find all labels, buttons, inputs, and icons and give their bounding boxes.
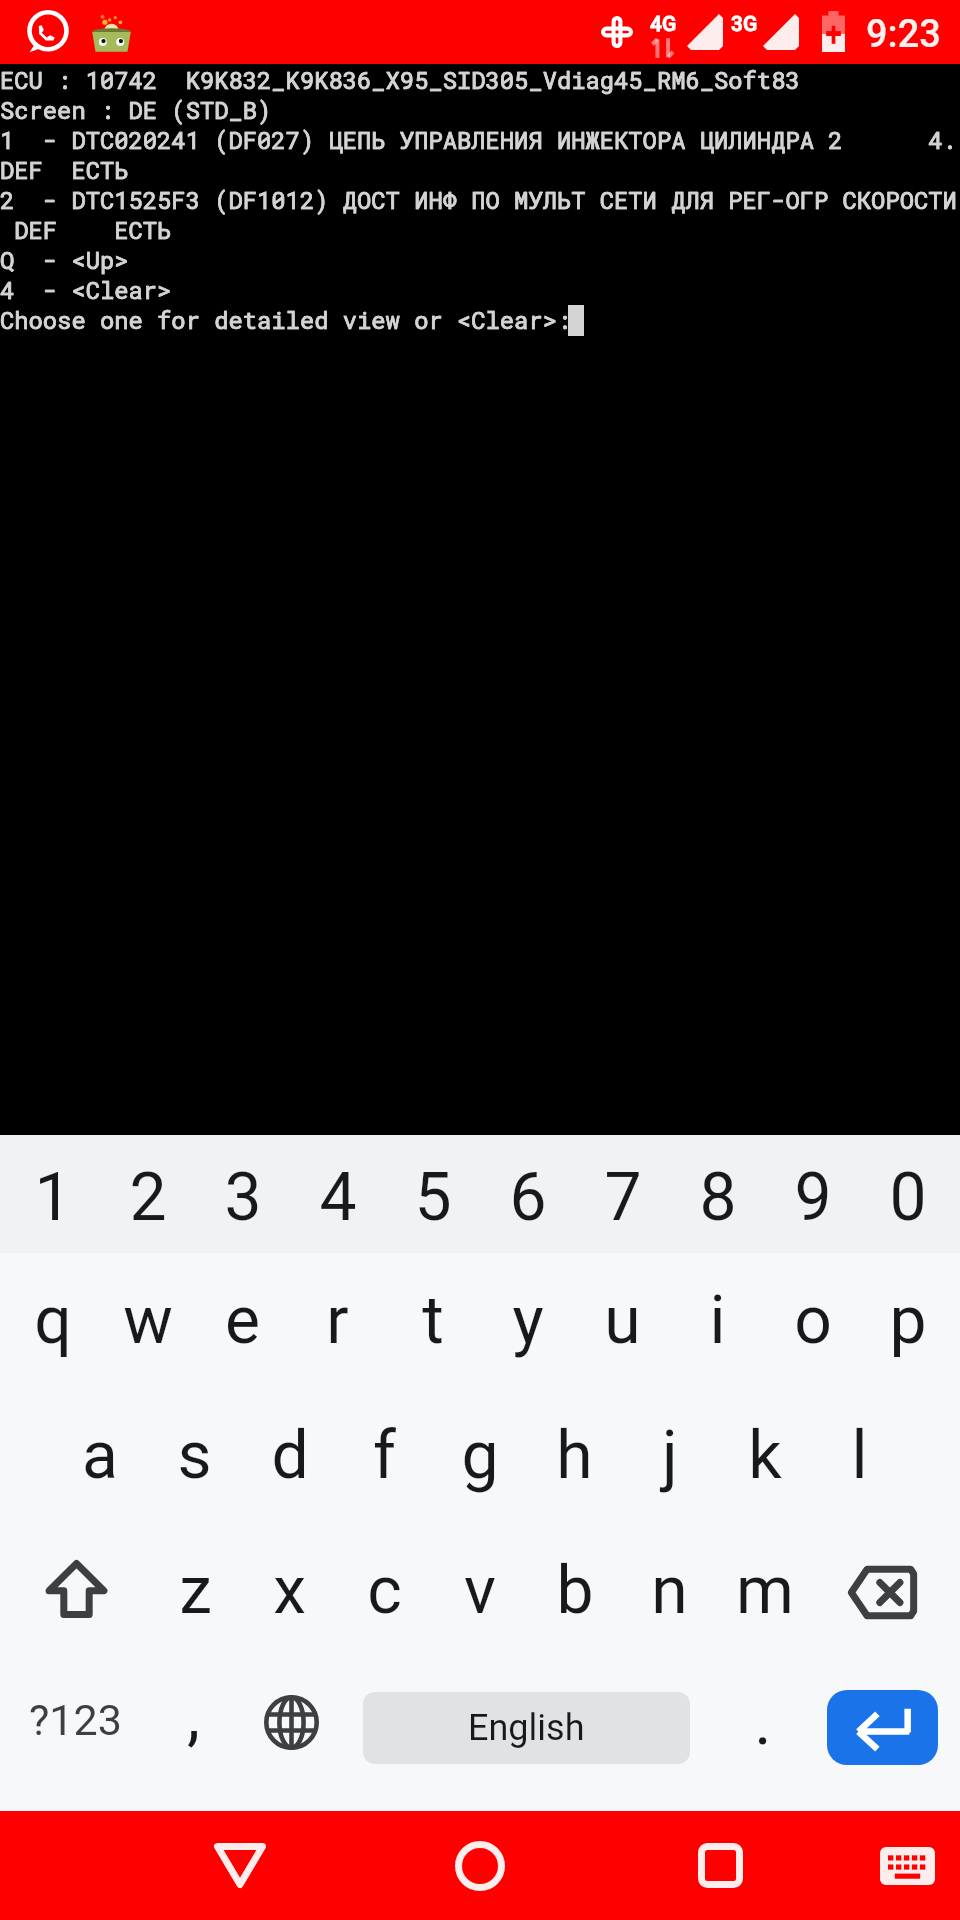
staticText: DEF ЕСТЬ — [0, 214, 172, 245]
staticText: v — [464, 1552, 496, 1629]
button[interactable]: y — [480, 1253, 575, 1388]
staticText: o — [794, 1282, 832, 1359]
button[interactable]: Shift — [0, 1523, 148, 1658]
button[interactable]: n — [622, 1523, 717, 1658]
button[interactable]: Recents — [650, 1811, 790, 1920]
staticText: Choose one for detailed view or <Clear>: — [0, 304, 572, 335]
staticText: English — [468, 1707, 585, 1749]
button[interactable]: 0 — [860, 1135, 955, 1253]
staticText: p — [889, 1282, 927, 1359]
button[interactable]: 2 — [100, 1135, 195, 1253]
staticText: ECU : 10742 K9K832_K9K836_X95_SID305_Vdi… — [0, 64, 800, 95]
button[interactable]: z — [148, 1523, 242, 1658]
staticText: x — [273, 1552, 306, 1629]
staticText: l — [851, 1417, 868, 1494]
button[interactable]: 5 — [385, 1135, 480, 1253]
button[interactable]: English — [363, 1692, 690, 1764]
button[interactable]: Backspace — [812, 1523, 960, 1658]
button[interactable]: s — [147, 1388, 242, 1523]
button[interactable]: 9 — [765, 1135, 860, 1253]
button[interactable]: Back — [170, 1811, 310, 1920]
button[interactable]: w — [100, 1253, 195, 1388]
button[interactable]: Change language — [228, 1658, 340, 1793]
staticText: 4G — [650, 12, 677, 37]
button[interactable]: r — [290, 1253, 385, 1388]
button[interactable]: q — [5, 1253, 100, 1388]
staticText: u — [604, 1282, 641, 1359]
button[interactable]: Home — [410, 1811, 550, 1920]
staticText: , — [187, 1677, 200, 1754]
button[interactable]: 7 — [575, 1135, 670, 1253]
button[interactable]: Enter — [827, 1690, 938, 1765]
staticText: m — [736, 1552, 794, 1629]
button[interactable]: 6 — [480, 1135, 575, 1253]
button[interactable]: a — [53, 1388, 147, 1523]
staticText: DEF ЕСТЬ — [0, 214, 172, 245]
staticText: 0 — [889, 1159, 927, 1236]
staticText: Screen : DE (STD_B) — [0, 94, 272, 125]
staticText: c — [367, 1552, 402, 1629]
button[interactable]: l — [812, 1388, 907, 1523]
button[interactable]: d — [242, 1388, 337, 1523]
button[interactable]: 1 — [5, 1135, 100, 1253]
staticText: n — [651, 1552, 688, 1629]
button[interactable]: j — [622, 1388, 717, 1523]
staticText: s — [177, 1417, 212, 1494]
staticText: a — [82, 1417, 118, 1494]
staticText: 6 — [509, 1159, 547, 1236]
button[interactable]: v — [432, 1523, 527, 1658]
staticText: 1 — [34, 1159, 72, 1236]
button[interactable]: e — [195, 1253, 290, 1388]
button[interactable]: h — [527, 1388, 622, 1523]
staticText: ?123 — [29, 1695, 122, 1745]
button[interactable]: k — [717, 1388, 812, 1523]
button[interactable]: 3 — [195, 1135, 290, 1253]
staticText: Choose one for detailed view or <Clear>: — [0, 304, 572, 335]
staticText: . — [754, 1683, 772, 1760]
button[interactable]: 8 — [670, 1135, 765, 1253]
staticText: 3 — [224, 1159, 262, 1236]
staticText: y — [512, 1282, 544, 1359]
staticText: f — [373, 1417, 396, 1494]
button[interactable]: Switch keyboard — [847, 1811, 960, 1920]
button[interactable]: 4 — [290, 1135, 385, 1253]
button[interactable]: . — [724, 1658, 802, 1793]
staticText: h — [556, 1417, 593, 1494]
staticText: 5 — [414, 1159, 452, 1236]
staticText: 1 - DTC020241 (DF027) ЦЕПЬ УПРАВЛЕНИЯ ИН… — [0, 124, 957, 155]
staticText: g — [461, 1417, 499, 1494]
button[interactable]: t — [385, 1253, 480, 1388]
staticText: q — [34, 1282, 72, 1359]
staticText: 7 — [604, 1159, 642, 1236]
staticText: 9:23 — [866, 12, 941, 57]
staticText: 4 — [319, 1159, 357, 1236]
staticText: Screen : DE (STD_B) — [0, 94, 272, 125]
staticText: DEF ЕСТЬ — [0, 154, 129, 185]
button[interactable]: ?123 — [0, 1658, 150, 1793]
staticText: 2 - DTC1525F3 (DF1012) ДОСТ ИНФ ПО МУЛЬТ… — [0, 184, 957, 215]
button[interactable]: m — [717, 1523, 812, 1658]
staticText: 2 — [129, 1159, 167, 1236]
button[interactable]: u — [575, 1253, 670, 1388]
staticText: t — [422, 1282, 444, 1359]
staticText: 9 — [794, 1159, 832, 1236]
staticText: 3G — [731, 12, 758, 37]
staticText: i — [709, 1282, 726, 1359]
staticText: b — [556, 1552, 594, 1629]
staticText: ECU : 10742 K9K832_K9K836_X95_SID305_Vdi… — [0, 64, 800, 95]
staticText: 4 - <Clear> — [0, 274, 172, 305]
button[interactable]: g — [432, 1388, 527, 1523]
staticText: 2 - DTC1525F3 (DF1012) ДОСТ ИНФ ПО МУЛЬТ… — [0, 184, 957, 215]
button[interactable]: c — [337, 1523, 432, 1658]
button[interactable]: o — [765, 1253, 860, 1388]
staticText: 8 — [699, 1159, 737, 1236]
staticText: Q - <Up> — [0, 244, 129, 275]
button[interactable]: x — [242, 1523, 337, 1658]
button[interactable]: f — [337, 1388, 432, 1523]
button[interactable]: i — [670, 1253, 765, 1388]
button[interactable]: p — [860, 1253, 955, 1388]
staticText: 4 - <Clear> — [0, 274, 172, 305]
staticText: Q - <Up> — [0, 244, 129, 275]
button[interactable]: b — [527, 1523, 622, 1658]
button[interactable]: , — [150, 1658, 228, 1793]
